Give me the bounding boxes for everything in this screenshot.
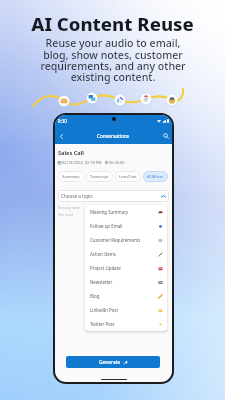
staticText: Twitter Post xyxy=(90,321,158,327)
staticText: Choose a topic xyxy=(61,193,93,199)
staticText: Customer Requirements xyxy=(90,237,158,243)
staticText: 02/13/2024, 02:18 PM xyxy=(62,160,102,165)
staticText: Blog xyxy=(90,293,158,299)
button[interactable]: LinkedIn Post xyxy=(85,303,167,317)
staticText: 06:30:00 xyxy=(109,160,125,165)
staticText: Project Update xyxy=(90,265,158,271)
button[interactable]: Follow-up Email xyxy=(85,219,167,233)
button[interactable]: Blog xyxy=(85,289,167,303)
staticText: LexisChat xyxy=(119,174,137,179)
button[interactable]: Choose a topic xyxy=(58,190,169,202)
button[interactable]: LexisChat xyxy=(115,171,141,182)
staticText: Transcript xyxy=(90,174,109,179)
staticText: Conversations xyxy=(97,133,130,139)
staticText: AI Content Reuse xyxy=(31,11,194,36)
button[interactable]: Transcript xyxy=(86,171,113,182)
button[interactable]: Meeting Summary xyxy=(85,205,167,219)
button[interactable]: Summary xyxy=(58,171,84,182)
staticText: Sales Call xyxy=(58,149,84,157)
staticText: LinkedIn Post xyxy=(90,307,158,313)
button[interactable]: Twitter Post xyxy=(85,317,167,331)
staticText: Summary xyxy=(62,174,80,179)
staticText: Action Items xyxy=(90,251,158,257)
button[interactable]: Customer Requirements xyxy=(85,233,167,247)
staticText: AI Writer xyxy=(147,174,164,179)
staticText: Reuse your audio to email, blog, show no… xyxy=(40,36,186,84)
button[interactable]: Project Update xyxy=(85,261,167,275)
button[interactable]: AI Writer xyxy=(143,171,168,182)
staticText: Follow-up Email xyxy=(90,223,158,229)
button[interactable]: Generate xyxy=(66,356,160,368)
staticText: Meeting Summary xyxy=(90,209,158,215)
staticText: 9:30 xyxy=(58,118,67,124)
staticText: Generate xyxy=(99,359,121,366)
staticText: Newsletter xyxy=(90,279,158,285)
button[interactable]: Back xyxy=(55,130,67,142)
button[interactable]: Action Items xyxy=(85,247,167,261)
button[interactable]: Newsletter xyxy=(85,275,167,289)
button[interactable]: Search xyxy=(160,130,172,142)
staticText: Simply sele the rest xyxy=(58,205,80,217)
